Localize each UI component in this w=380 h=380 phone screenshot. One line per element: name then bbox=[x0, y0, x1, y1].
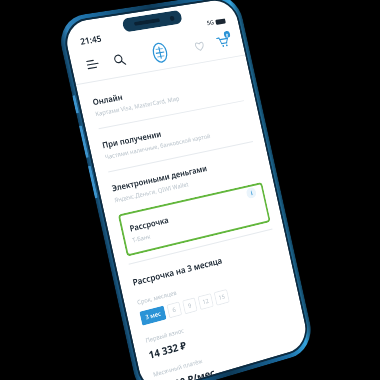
staticText: Срок, месяцев bbox=[136, 288, 178, 307]
button[interactable]: 9 bbox=[182, 297, 198, 314]
staticText: 12 bbox=[202, 297, 210, 306]
staticText: 9 bbox=[187, 301, 193, 310]
staticText: При получении bbox=[101, 128, 162, 150]
staticText: Т-Банк bbox=[131, 232, 151, 245]
staticText: i bbox=[250, 189, 253, 197]
button[interactable]: Info bbox=[245, 187, 257, 199]
button[interactable]: 15 bbox=[214, 289, 230, 306]
staticText: 14 332 ₽ bbox=[147, 338, 187, 362]
button[interactable]: Favorites bbox=[189, 36, 209, 56]
staticText: 15 bbox=[218, 293, 226, 302]
button[interactable]: При получении bbox=[100, 106, 252, 166]
staticText: Электронными деньгами bbox=[111, 162, 209, 193]
button[interactable]: Cart bbox=[212, 31, 233, 53]
button[interactable]: Filters bbox=[82, 53, 103, 74]
staticText: Месячный платёж bbox=[152, 357, 204, 379]
staticText: Чаcтями наличные, банковской картой bbox=[104, 132, 212, 161]
staticText: Картами Visa, MasterCard, Мир bbox=[94, 94, 181, 118]
staticText: 12 000 ₽/мес bbox=[155, 365, 215, 380]
staticText: 0 bbox=[225, 32, 229, 38]
button[interactable]: Search bbox=[108, 49, 129, 70]
button[interactable]: Logo bbox=[147, 40, 172, 65]
staticText: Рассрочка bbox=[128, 214, 170, 234]
button[interactable]: Электронными деньгами bbox=[109, 147, 261, 209]
button[interactable]: Онлайн bbox=[90, 65, 243, 123]
staticText: Онлайн bbox=[91, 91, 124, 107]
staticText: 21:45 bbox=[79, 32, 103, 48]
button[interactable]: 3 мес bbox=[139, 305, 167, 326]
staticText: Первый взнос bbox=[145, 326, 185, 345]
staticText: 3 мес bbox=[145, 309, 162, 322]
button[interactable]: 6 bbox=[166, 301, 182, 319]
staticText: 5G bbox=[206, 18, 215, 27]
button[interactable]: Рассрочка bbox=[118, 182, 271, 257]
button[interactable]: 12 bbox=[197, 293, 214, 310]
staticText: 6 bbox=[172, 305, 177, 314]
staticText: Рассрочка на 3 месяца bbox=[131, 254, 224, 289]
staticText: Яндекс.Деньги, QIWI Wallet bbox=[114, 180, 190, 204]
